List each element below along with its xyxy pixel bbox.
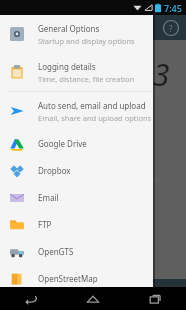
button[interactable]: Auto send, email and upload — [0, 92, 153, 130]
button[interactable]: OpenStreetMap — [0, 265, 153, 292]
staticText: OpenStreetMap — [38, 273, 98, 284]
staticText: 3 — [153, 54, 170, 95]
staticText: Dropbox — [38, 165, 71, 176]
staticText: FTP — [38, 219, 52, 230]
staticText: General Options — [38, 23, 100, 34]
button[interactable]: Recents — [124, 287, 186, 310]
staticText: Logging details — [38, 61, 96, 72]
button[interactable]: Dropbox — [0, 157, 153, 184]
staticText: 7:45 — [164, 2, 182, 14]
button[interactable]: Back — [0, 287, 62, 310]
button[interactable]: Home — [62, 287, 124, 310]
staticText: OpenGTS — [38, 246, 74, 257]
button[interactable]: OpenGTS — [0, 238, 153, 265]
staticText: m/ — [152, 176, 160, 184]
button[interactable]: Email — [0, 184, 153, 211]
button[interactable]: Help — [162, 19, 180, 37]
button[interactable]: Logging details — [0, 53, 153, 91]
staticText: Startup and display options — [38, 36, 135, 46]
staticText: ? — [169, 23, 173, 34]
staticText: Auto send, email and upload — [38, 100, 146, 111]
staticText: Time, distance, file creation — [38, 74, 135, 84]
staticText: Email — [38, 192, 59, 203]
staticText: Email, share and upload options — [38, 113, 152, 123]
staticText: Google Drive — [38, 138, 87, 149]
button[interactable]: General Options — [0, 15, 153, 53]
button[interactable]: Share — [154, 287, 170, 303]
button[interactable]: Google Drive — [0, 130, 153, 157]
button[interactable]: FTP — [0, 211, 153, 238]
